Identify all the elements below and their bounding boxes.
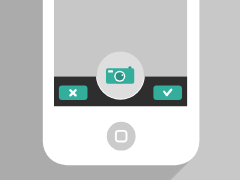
other: Take photo	[0, 0, 240, 180]
